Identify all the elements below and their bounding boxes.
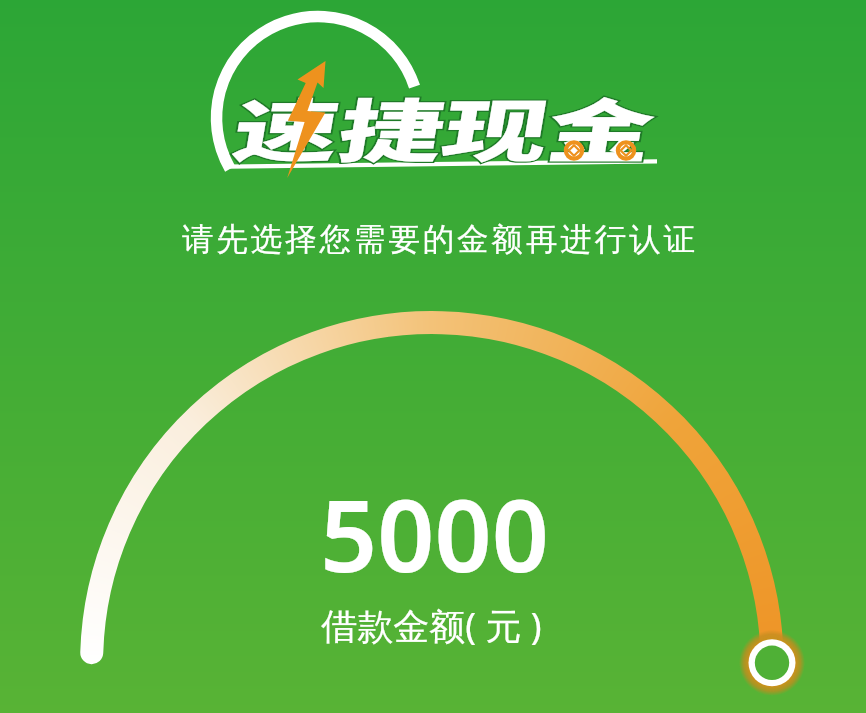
staticText: 5000 <box>320 465 549 601</box>
staticText: 借款金额( 元 ) <box>321 601 542 650</box>
staticText: 请先选择您需要的金额再进行认证 <box>7 220 866 260</box>
button[interactable]: 速捷现金 <box>205 4 665 184</box>
button[interactable]: 调整借款金额 <box>739 630 805 696</box>
